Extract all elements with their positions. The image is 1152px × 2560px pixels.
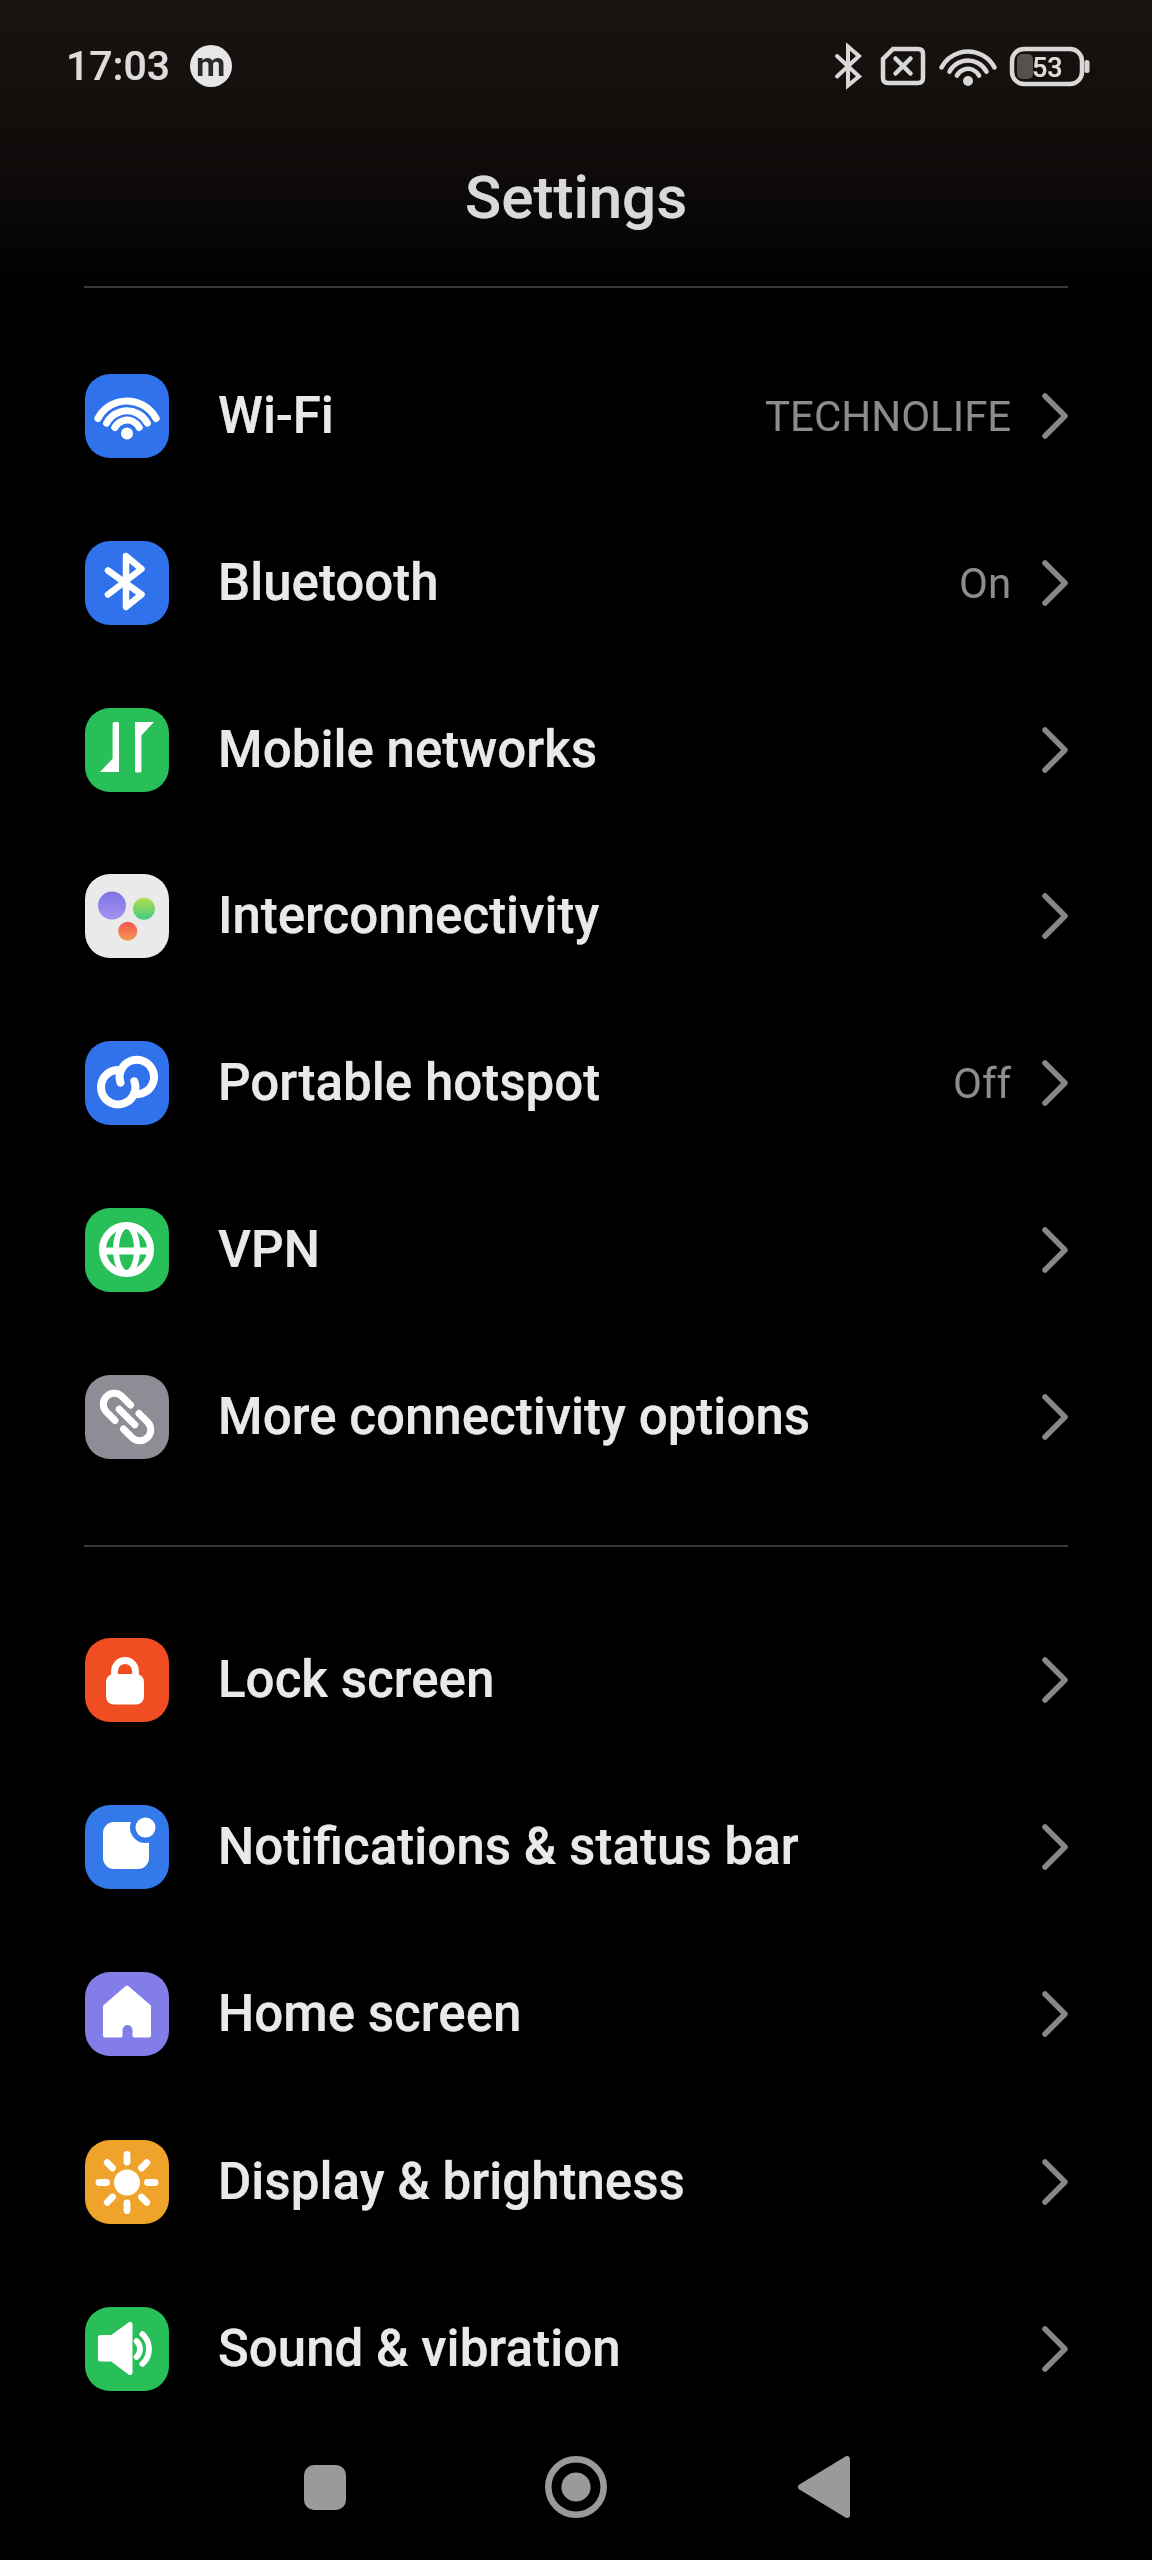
staticText: More connectivity options [218,1387,811,1447]
staticText: m [196,45,226,84]
staticText: Portable hotspot [218,1053,601,1113]
staticText: Wi-Fi [218,386,334,446]
staticText: Off [953,1059,1012,1108]
staticText: Home screen [218,1984,522,2044]
button[interactable] [283,2444,368,2529]
button[interactable]: Wi-Fi [0,333,1152,499]
staticText: Notifications & status bar [218,1817,799,1877]
staticText: Mobile networks [218,720,598,780]
button[interactable]: Mobile networks [0,667,1152,833]
button[interactable] [533,2444,618,2529]
staticText: On [959,559,1012,608]
staticText: Settings [465,162,688,232]
button[interactable]: Display & brightness [0,2099,1152,2265]
button[interactable]: Home screen [0,1931,1152,2097]
staticText: 17:03 [66,42,171,90]
staticText: 53 [1032,52,1063,84]
staticText: Lock screen [218,1650,495,1710]
button[interactable]: Interconnectivity [0,833,1152,999]
button[interactable]: VPN [0,1167,1152,1333]
staticText: VPN [218,1220,320,1280]
button[interactable]: Notifications & status bar [0,1764,1152,1930]
button[interactable] [783,2444,868,2529]
staticText: Display & brightness [218,2152,685,2212]
button[interactable]: Portable hotspot [0,1000,1152,1166]
button[interactable]: More connectivity options [0,1334,1152,1500]
staticText: Bluetooth [218,553,439,613]
button[interactable]: Bluetooth [0,500,1152,666]
staticText: Sound & vibration [218,2319,621,2379]
button[interactable]: Sound & vibration [0,2266,1152,2432]
staticText: TECHNOLIFE [765,392,1012,441]
button[interactable]: Lock screen [0,1597,1152,1763]
staticText: Interconnectivity [218,886,600,946]
